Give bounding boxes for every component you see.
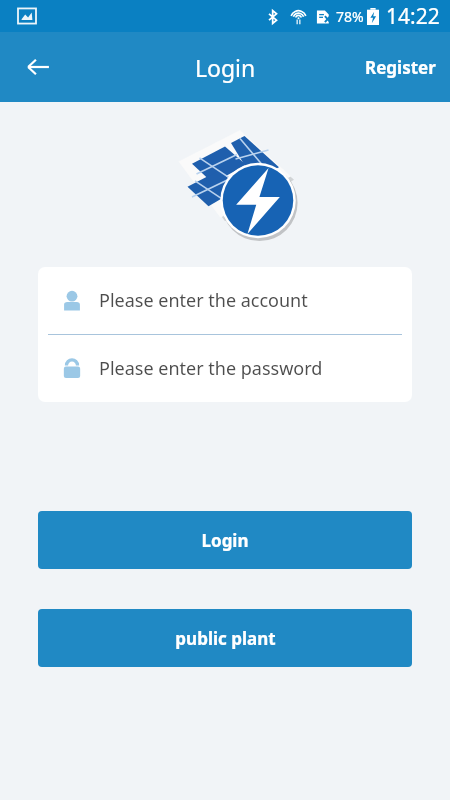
button[interactable]: Login: [38, 511, 412, 569]
staticText: Please enter the password: [99, 356, 323, 381]
staticText: 14:22: [386, 2, 440, 31]
staticText: public plant: [175, 627, 276, 650]
button[interactable]: Please enter the password: [38, 335, 412, 402]
button[interactable]: Back: [12, 41, 64, 93]
staticText: Login: [201, 529, 249, 552]
button[interactable]: public plant: [38, 609, 412, 667]
button[interactable]: Register: [351, 40, 450, 95]
staticText: 78%: [336, 7, 364, 26]
staticText: Please enter the account: [99, 288, 308, 313]
staticText: Register: [365, 56, 436, 79]
button[interactable]: Please enter the account: [38, 267, 412, 334]
staticText: Login: [195, 52, 256, 83]
